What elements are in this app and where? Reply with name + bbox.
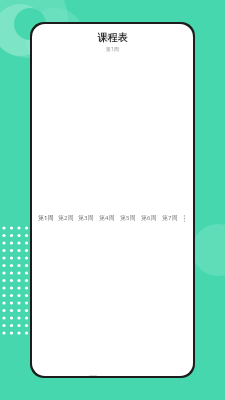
staticText: 第4周 (99, 214, 115, 222)
button[interactable]: 第7周 (159, 212, 180, 224)
button[interactable]: 第2周 (56, 212, 76, 224)
staticText: 第7周 (162, 214, 178, 222)
staticText: 课程表 (32, 31, 193, 44)
button[interactable]: 第4周 (96, 212, 117, 224)
button[interactable]: 第1周 (36, 212, 56, 224)
staticText: 第5周 (120, 214, 136, 222)
staticText: 第1周 (32, 46, 193, 53)
staticText: 第1周 (38, 214, 54, 222)
button[interactable]: More options (180, 60, 189, 376)
staticText: 第3周 (78, 214, 94, 222)
button[interactable]: 第6周 (138, 212, 159, 224)
staticText: 第2周 (58, 214, 74, 222)
button[interactable]: 第5周 (117, 212, 138, 224)
button[interactable]: 第3周 (76, 212, 96, 224)
staticText: 第6周 (141, 214, 157, 222)
